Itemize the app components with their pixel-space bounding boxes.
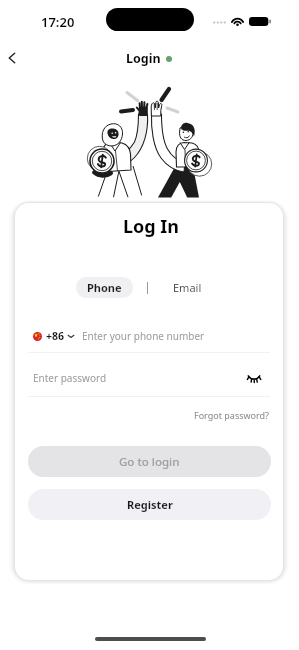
staticText: Register: [127, 497, 173, 512]
button[interactable]: Phone: [76, 277, 133, 298]
button[interactable]: Back: [0, 43, 27, 73]
staticText: 17:20: [41, 13, 75, 31]
staticText: Log In: [123, 214, 180, 239]
staticText: Phone: [87, 280, 122, 295]
staticText: Forgot password?: [194, 409, 270, 421]
staticText: Login: [126, 50, 161, 67]
button[interactable]: +86: [33, 320, 270, 352]
staticText: +86: [46, 329, 65, 343]
staticText: Go to login: [119, 454, 180, 470]
button[interactable]: Register: [28, 489, 271, 520]
staticText: Enter password: [33, 371, 107, 385]
button[interactable]: Show password: [243, 367, 265, 389]
button[interactable]: Email: [162, 277, 213, 298]
staticText: Email: [173, 280, 202, 295]
button[interactable]: Forgot password?: [187, 407, 270, 423]
staticText: Enter your phone number: [82, 329, 205, 343]
button[interactable]: Go to login: [28, 446, 271, 477]
